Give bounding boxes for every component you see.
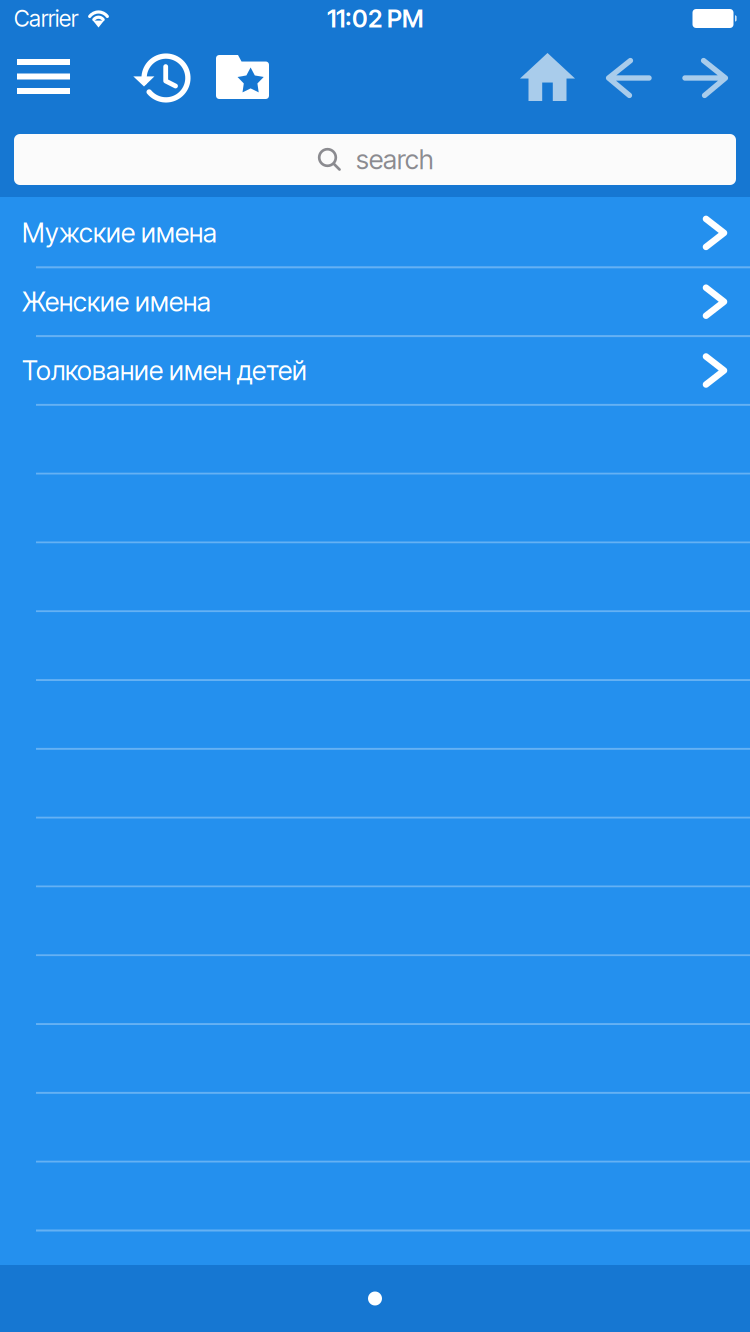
button[interactable]: Home <box>508 37 587 103</box>
staticText: Женские имена <box>22 286 211 318</box>
button[interactable]: search <box>14 103 736 185</box>
button[interactable]: Forward <box>673 37 740 103</box>
staticText: search <box>356 143 434 176</box>
button[interactable]: Толкование имен детей <box>0 337 750 406</box>
button[interactable]: Мужские имена <box>0 199 750 268</box>
button[interactable]: Favorites <box>204 37 281 103</box>
button[interactable]: History <box>122 37 202 103</box>
button[interactable]: Женские имена <box>0 268 750 337</box>
button[interactable]: Back <box>594 37 661 103</box>
staticText: Carrier <box>14 5 78 32</box>
button[interactable]: Menu <box>5 37 82 103</box>
staticText: Мужские имена <box>22 217 217 249</box>
staticText: Толкование имен детей <box>22 354 307 387</box>
staticText: 11:02 PM <box>327 4 423 33</box>
